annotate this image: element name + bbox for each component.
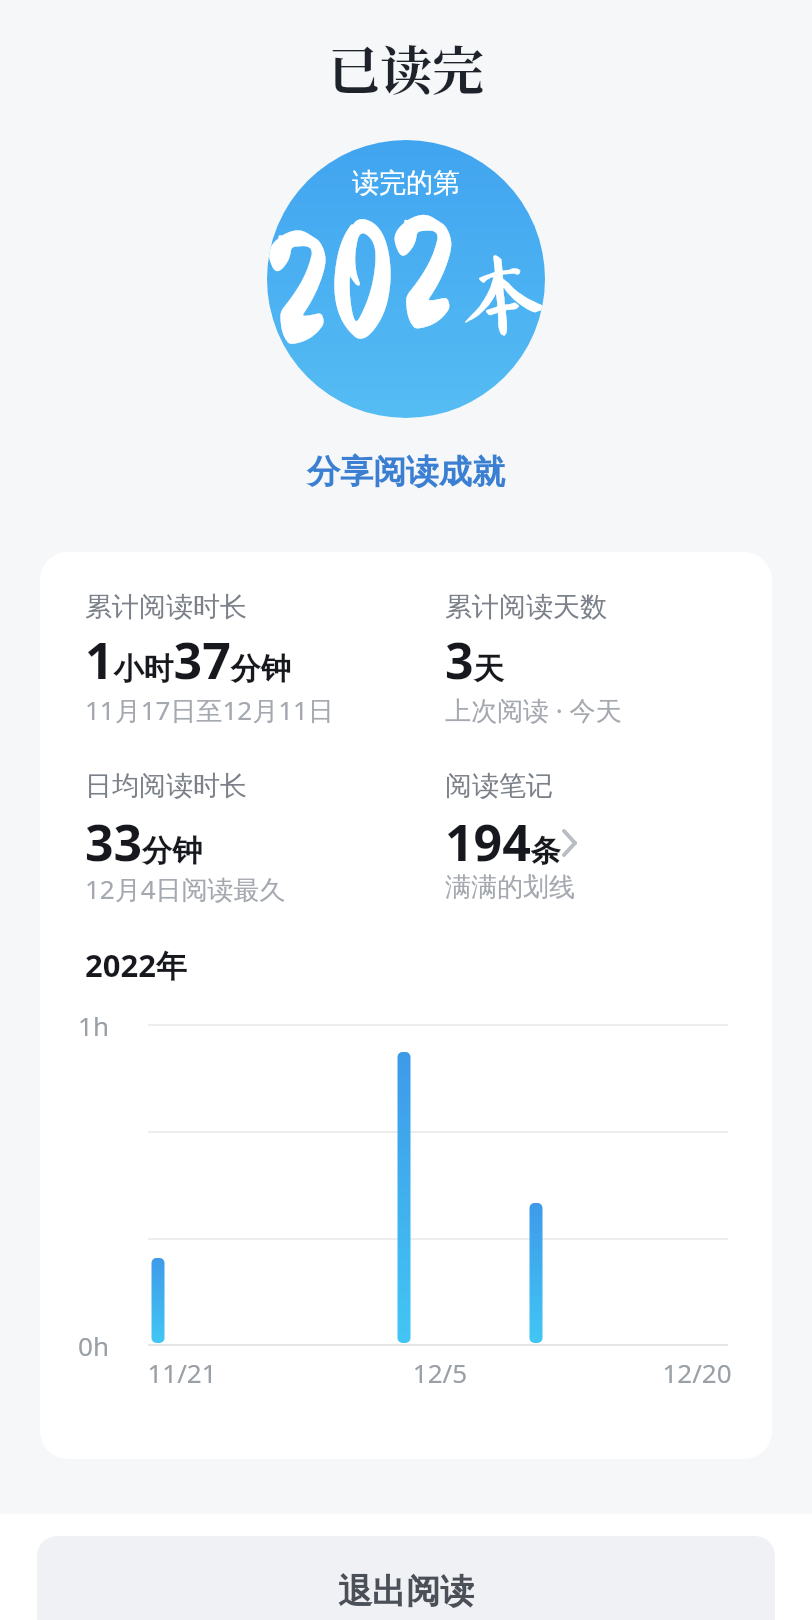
staticText: 12月4日阅读最久 bbox=[85, 871, 286, 907]
staticText: 1h bbox=[60, 1008, 109, 1060]
staticText: 1小时37分钟 bbox=[85, 626, 291, 694]
staticText: 上次阅读 · 今天 bbox=[445, 692, 622, 728]
staticText: 3天 bbox=[445, 626, 504, 694]
staticText: 阅读笔记 bbox=[445, 769, 553, 803]
staticText: 202 bbox=[267, 192, 465, 376]
staticText: 0h bbox=[60, 1328, 109, 1380]
staticText: 累计阅读时长 bbox=[85, 590, 247, 624]
staticText: 本 bbox=[453, 244, 545, 342]
staticText: 累计阅读天数 bbox=[445, 590, 607, 624]
button[interactable]: 退出阅读 bbox=[37, 1536, 775, 1620]
staticText: 194条 bbox=[445, 808, 561, 876]
staticText: 11月17日至12月11日 bbox=[85, 692, 334, 728]
staticText: 12/5 bbox=[380, 1355, 500, 1407]
staticText: 11/21 bbox=[122, 1355, 242, 1407]
staticText: 满满的划线 bbox=[445, 871, 575, 904]
staticText: 读完的第 bbox=[267, 166, 545, 220]
staticText: 分享阅读成就 bbox=[307, 451, 505, 493]
staticText: 33分钟 bbox=[85, 808, 203, 876]
staticText: 12/20 bbox=[637, 1355, 757, 1407]
button[interactable]: 分享阅读成就 bbox=[307, 451, 505, 493]
staticText: 退出阅读 bbox=[338, 1570, 474, 1613]
staticText: 日均阅读时长 bbox=[85, 769, 247, 803]
staticText: 2022年 bbox=[85, 944, 187, 986]
staticText: 已读完 bbox=[0, 30, 812, 134]
